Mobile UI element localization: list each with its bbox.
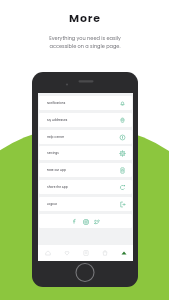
staticText: Everything you need is easily accessible… — [49, 35, 121, 50]
staticText: My Addresses — [47, 118, 68, 122]
button[interactable]: more — [114, 245, 133, 261]
button[interactable]: Notifications — [39, 96, 132, 110]
button[interactable]: orders — [76, 245, 95, 261]
button[interactable]: Logout — [39, 197, 132, 211]
button[interactable]: fav — [57, 245, 76, 261]
button[interactable]: home — [38, 245, 57, 261]
button[interactable]: Settings — [39, 146, 132, 160]
button[interactable]: cart — [95, 245, 114, 261]
staticText: Share the App — [47, 185, 68, 189]
staticText: Notifications — [47, 101, 66, 105]
button[interactable]: Twitter — [91, 216, 102, 227]
staticText: More — [69, 10, 101, 25]
staticText: Help Center — [47, 135, 65, 139]
staticText: Logout — [47, 202, 57, 206]
button[interactable]: Share the App — [39, 180, 132, 194]
staticText: Rate our App — [47, 168, 66, 172]
button[interactable]: My Addresses — [39, 113, 132, 127]
staticText: Settings — [47, 151, 59, 155]
button[interactable]: Instagram — [80, 216, 91, 227]
button[interactable]: Rate our App — [39, 163, 132, 177]
button[interactable]: Facebook — [69, 216, 80, 227]
button[interactable]: Help Center — [39, 130, 132, 144]
